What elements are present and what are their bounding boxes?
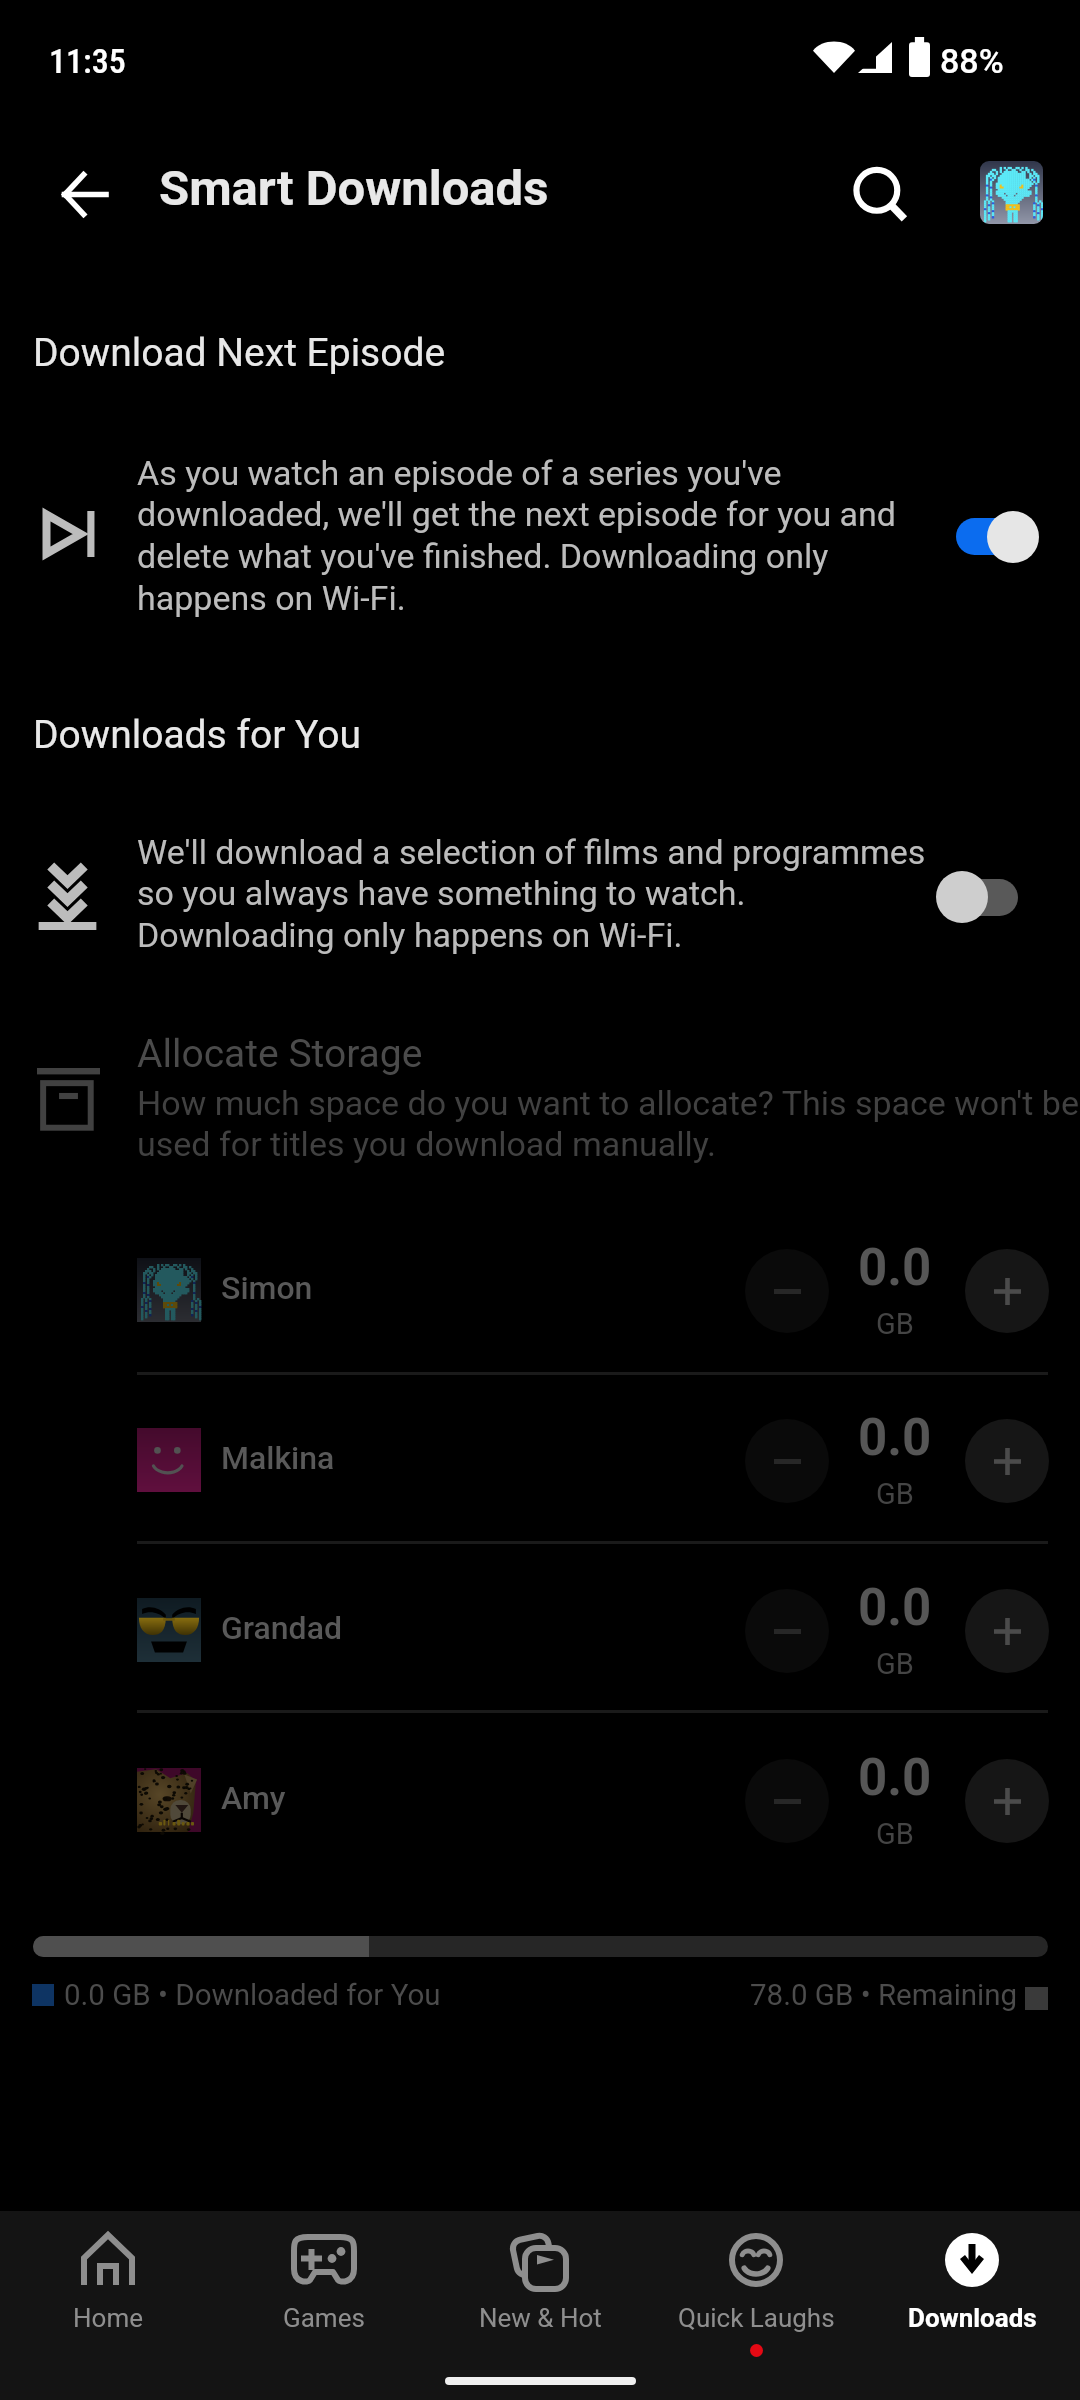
staticText: 0.0: [858, 1578, 932, 1638]
staticText: Smart Downloads: [159, 160, 549, 217]
staticText: 88%: [940, 41, 1004, 81]
staticText: New & Hot: [479, 2303, 602, 2333]
button[interactable]: Increase storage for Simon: [965, 1249, 1049, 1333]
staticText: Grandad: [221, 1609, 342, 1647]
staticText: As you watch an episode of a series you'…: [137, 453, 937, 619]
button[interactable]: Increase storage for Grandad: [965, 1589, 1049, 1673]
staticText: 0.0: [858, 1238, 932, 1298]
staticText: 0.0 GB • Downloaded for You: [64, 1978, 441, 2013]
button[interactable]: Back: [22, 132, 146, 256]
button[interactable]: Decrease storage for Simon: [745, 1249, 829, 1333]
staticText: GB: [876, 1477, 914, 1511]
staticText: Allocate Storage: [137, 1031, 423, 1077]
button[interactable]: Turn on: [934, 869, 1030, 925]
staticText: Downloads for You: [33, 712, 362, 758]
staticText: Amy: [221, 1779, 286, 1817]
staticText: How much space do you want to allocate? …: [137, 1083, 1080, 1165]
staticText: Simon: [221, 1269, 313, 1307]
staticText: Download Next Episode: [33, 330, 446, 376]
staticText: GB: [876, 1817, 914, 1851]
staticText: GB: [876, 1307, 914, 1341]
staticText: Downloads: [908, 2303, 1037, 2333]
button[interactable]: New & Hot: [432, 2211, 648, 2400]
button[interactable]: Games: [216, 2211, 432, 2400]
staticText: 11:35: [49, 41, 126, 81]
button[interactable]: Downloads: [864, 2211, 1080, 2400]
button[interactable]: As you watch an episode of a series you'…: [0, 453, 1080, 653]
staticText: 0.0: [858, 1408, 932, 1468]
button[interactable]: Decrease storage for Grandad: [745, 1589, 829, 1673]
staticText: 78.0 GB • Remaining: [750, 1978, 1018, 2013]
staticText: GB: [876, 1647, 914, 1681]
button[interactable]: Increase storage for Malkina: [965, 1419, 1049, 1503]
button[interactable]: We'll download a selection of films and …: [0, 832, 1080, 992]
button[interactable]: Increase storage for Amy: [965, 1759, 1049, 1843]
button[interactable]: Decrease storage for Amy: [745, 1759, 829, 1843]
button[interactable]: Decrease storage for Malkina: [745, 1419, 829, 1503]
staticText: Malkina: [221, 1439, 335, 1477]
button[interactable]: Search: [824, 138, 934, 248]
button[interactable]: Turn off: [950, 510, 1046, 566]
staticText: Games: [283, 2303, 365, 2333]
staticText: Quick Laughs: [678, 2303, 835, 2333]
button[interactable]: Profile: [980, 161, 1043, 224]
button[interactable]: Home: [0, 2211, 216, 2400]
staticText: Home: [73, 2303, 143, 2333]
staticText: We'll download a selection of films and …: [137, 832, 937, 956]
staticText: 0.0: [858, 1748, 932, 1808]
button[interactable]: Quick Laughs: [648, 2211, 864, 2400]
